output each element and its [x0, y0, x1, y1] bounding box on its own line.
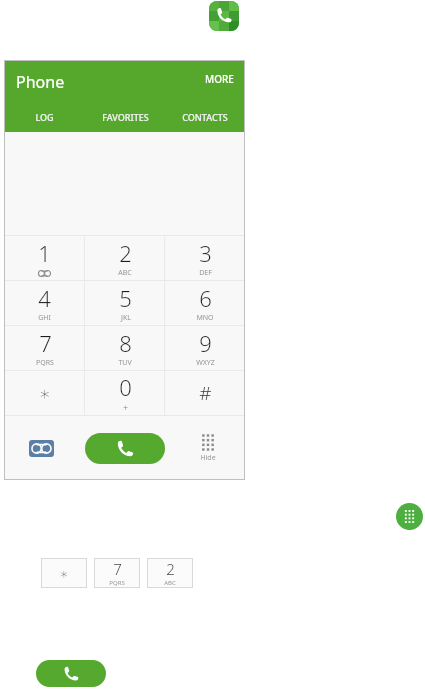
button[interactable]: 0: [85, 370, 165, 415]
button[interactable]: 5: [85, 280, 165, 325]
staticText: CONTACTS: [182, 111, 228, 123]
button[interactable]: 9: [165, 325, 245, 370]
button[interactable]: Open dial pad: [396, 503, 423, 530]
staticText: 0: [119, 372, 132, 402]
staticText: DEF: [199, 268, 212, 278]
staticText: 7: [39, 328, 52, 358]
staticText: LOG: [35, 111, 54, 123]
button[interactable]: Phone app icon: [209, 1, 239, 31]
staticText: 1: [38, 238, 51, 268]
button[interactable]: MORE: [201, 68, 238, 90]
staticText: 6: [199, 283, 212, 313]
staticText: WXYZ: [196, 358, 215, 368]
button[interactable]: CONTACTS: [165, 102, 245, 132]
staticText: ∗: [59, 565, 69, 582]
staticText: 5: [119, 283, 132, 313]
button[interactable]: 3: [165, 235, 245, 280]
staticText: +: [123, 402, 128, 413]
button[interactable]: 7: [94, 558, 140, 588]
staticText: 4: [38, 283, 51, 313]
staticText: 3: [199, 238, 212, 268]
button[interactable]: 1: [4, 235, 85, 280]
staticText: MORE: [205, 72, 234, 86]
staticText: PQRS: [36, 358, 54, 368]
button[interactable]: FAVORITES: [85, 102, 165, 132]
button[interactable]: #: [165, 370, 245, 415]
staticText: #: [199, 380, 212, 406]
button[interactable]: Call: [36, 660, 106, 687]
button[interactable]: ∗: [41, 558, 87, 588]
staticText: 2: [119, 238, 132, 268]
button[interactable]: Hide keypad: [171, 417, 245, 480]
staticText: MNO: [196, 313, 214, 323]
staticText: FAVORITES: [102, 111, 149, 123]
staticText: 8: [119, 328, 132, 358]
button[interactable]: 8: [85, 325, 165, 370]
button[interactable]: 2: [147, 558, 193, 588]
staticText: JKL: [121, 313, 131, 323]
button[interactable]: 6: [165, 280, 245, 325]
button[interactable]: LOG: [4, 102, 85, 132]
staticText: ABC: [118, 268, 132, 278]
staticText: 9: [199, 328, 212, 358]
staticText: 7: [113, 559, 122, 579]
button[interactable]: 7: [4, 325, 85, 370]
staticText: GHI: [38, 313, 51, 323]
staticText: TUV: [118, 358, 132, 368]
staticText: 2: [166, 559, 175, 579]
staticText: PQRS: [109, 579, 125, 587]
button[interactable]: ∗: [4, 370, 85, 415]
staticText: ∗: [39, 382, 51, 404]
staticText: ABC: [164, 579, 176, 587]
button[interactable]: Voicemail: [4, 417, 78, 480]
button[interactable]: 2: [85, 235, 165, 280]
staticText: Hide: [200, 453, 216, 463]
button[interactable]: 4: [4, 280, 85, 325]
staticText: Phone: [16, 71, 65, 93]
button[interactable]: Call: [85, 433, 165, 464]
